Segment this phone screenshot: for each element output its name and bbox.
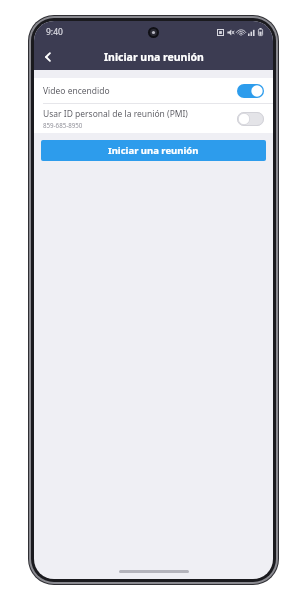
staticText: 859-685-8950 — [43, 121, 83, 129]
button[interactable]: Back — [34, 43, 61, 70]
staticText: Iniciar una reunión — [104, 50, 204, 64]
staticText: Iniciar una reunión — [108, 144, 199, 157]
staticText: 9:40 — [46, 26, 63, 38]
button[interactable]: Usar ID personal de la reunión (PMI) — [34, 104, 273, 133]
button[interactable]: Video encendido — [34, 78, 273, 103]
button[interactable]: Iniciar una reunión — [41, 140, 266, 161]
button[interactable]: Toggle off — [237, 112, 264, 126]
staticText: Video encendido — [43, 85, 237, 97]
button[interactable]: Toggle on — [237, 84, 264, 98]
staticText: Usar ID personal de la reunión (PMI) — [43, 108, 188, 120]
